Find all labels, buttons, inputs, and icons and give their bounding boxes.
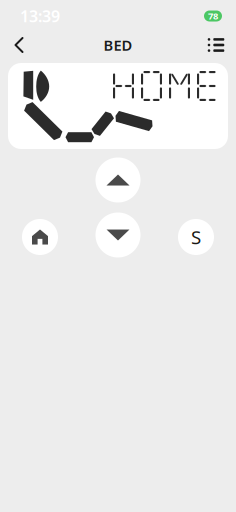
button[interactable]: Raise: [95, 157, 140, 202]
button[interactable]: Home position: [22, 219, 58, 255]
button[interactable]: Back: [5, 28, 34, 64]
staticText: 78: [208, 10, 218, 22]
staticText: 13:39: [20, 5, 60, 27]
button[interactable]: Lower: [95, 212, 140, 257]
button[interactable]: List: [198, 28, 234, 62]
staticText: BED: [103, 35, 132, 55]
staticText: S: [191, 225, 201, 249]
button[interactable]: Sync: [178, 219, 214, 255]
